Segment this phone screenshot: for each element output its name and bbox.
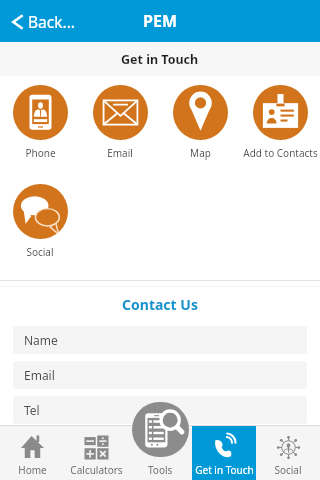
staticText: Home — [18, 463, 47, 477]
button[interactable]: Add to Contacts — [240, 85, 320, 160]
staticText: Get in Touch — [195, 463, 254, 477]
button[interactable]: Calculators — [64, 426, 128, 480]
button[interactable]: Email — [80, 85, 160, 160]
staticText: Tools — [148, 463, 173, 477]
staticText: Email — [107, 146, 133, 160]
staticText: Social — [274, 463, 302, 477]
button[interactable]: Get in Touch — [192, 426, 256, 480]
button[interactable]: Name — [13, 326, 307, 354]
staticText: Name — [24, 332, 58, 348]
button[interactable]: Map — [160, 85, 240, 160]
staticText: Phone — [25, 146, 56, 160]
button[interactable]: Email — [13, 361, 307, 389]
staticText: Back... — [28, 11, 75, 32]
staticText: Get in Touch — [121, 51, 199, 68]
button[interactable]: Social — [0, 184, 80, 259]
button[interactable]: Back... — [0, 11, 144, 32]
staticText: Tel — [24, 402, 40, 418]
staticText: Email — [24, 367, 55, 383]
button[interactable]: Social — [256, 426, 320, 480]
staticText: Map — [190, 146, 211, 160]
other: Tools — [132, 402, 189, 457]
staticText: PEM — [143, 10, 177, 32]
button[interactable]: Tel — [13, 396, 307, 424]
staticText: Add to Contacts — [243, 146, 318, 160]
button[interactable]: Home — [0, 426, 64, 480]
staticText: Social — [26, 245, 54, 259]
staticText: Contact Us — [0, 295, 320, 314]
button[interactable]: Phone — [0, 85, 80, 160]
button[interactable]: Tools — [128, 425, 192, 480]
staticText: Calculators — [70, 463, 123, 477]
